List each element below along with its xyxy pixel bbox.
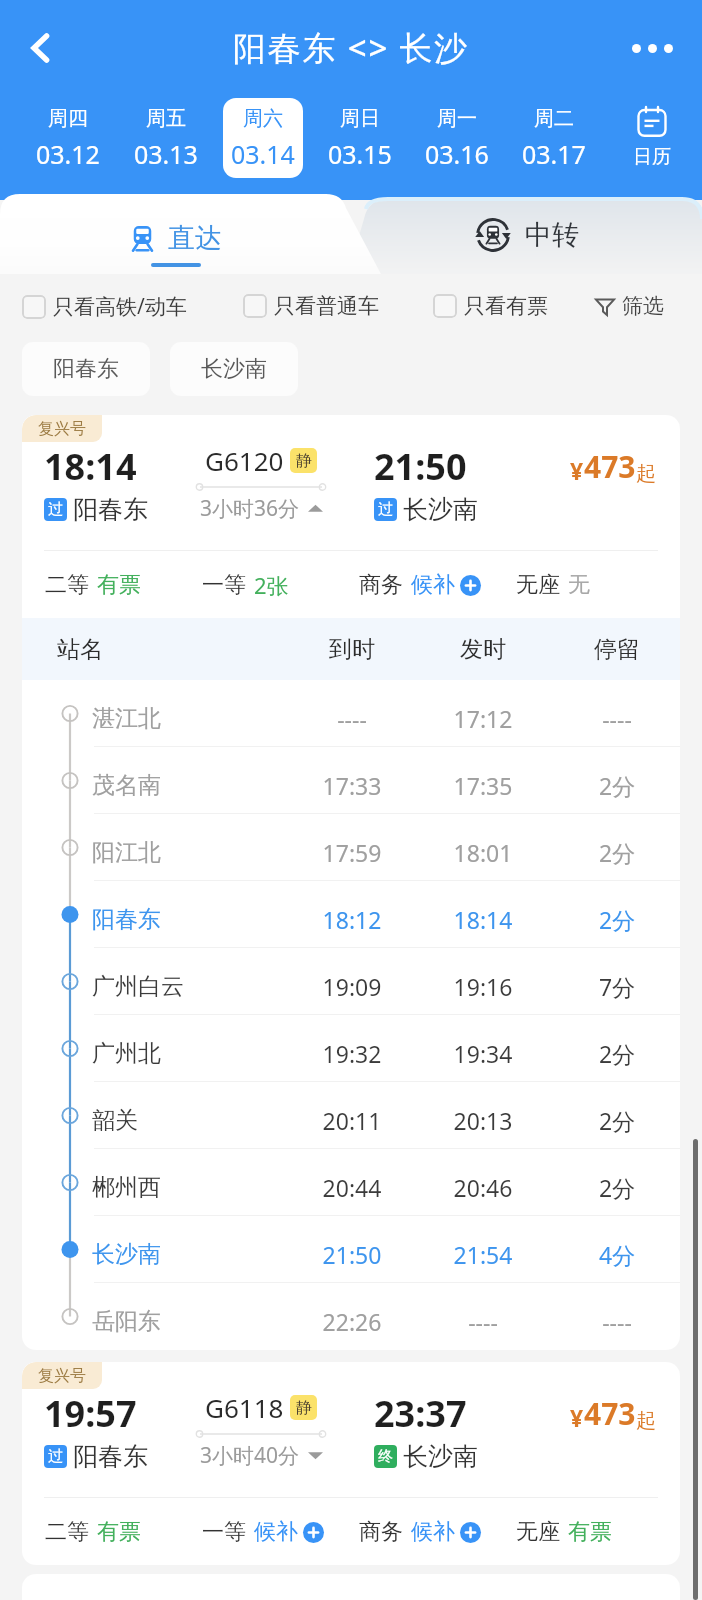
staticText: 筛选 — [622, 293, 664, 319]
staticText: G6118 — [205, 1390, 284, 1425]
button[interactable]: 只看普通车 — [243, 293, 379, 319]
staticText: 岳阳东 — [92, 1307, 292, 1336]
button[interactable]: 周四 — [19, 98, 117, 178]
button[interactable]: 只看高铁/动车 — [22, 292, 187, 321]
staticText: 候补 — [254, 1518, 298, 1546]
staticText: 17:33 — [292, 770, 412, 801]
staticText: 03.14 — [231, 137, 295, 171]
staticText: 周日 — [340, 106, 380, 131]
staticText: 站名 — [57, 635, 292, 664]
staticText: 473 — [584, 1393, 636, 1434]
staticText: 19:32 — [292, 1038, 412, 1069]
staticText: 过 — [48, 1447, 63, 1466]
staticText: 23:37 — [374, 1389, 467, 1438]
button[interactable]: Back — [10, 18, 70, 78]
staticText: 阳春东 — [73, 494, 148, 525]
button[interactable]: Calendar — [602, 98, 702, 178]
staticText: 阳春东 — [53, 355, 119, 383]
staticText: 17:59 — [292, 837, 412, 868]
button[interactable]: 筛选 — [595, 293, 664, 319]
button[interactable]: 复兴号 — [22, 415, 680, 1350]
staticText: 周四 — [48, 106, 88, 131]
staticText: 停留 — [554, 635, 680, 664]
staticText: 长沙南 — [92, 1240, 292, 1269]
button[interactable]: 阳春东 — [22, 342, 150, 396]
staticText: 过 — [378, 500, 393, 519]
staticText: 03.17 — [522, 137, 586, 171]
staticText: 20:46 — [412, 1172, 554, 1203]
staticText: 商务 — [359, 1518, 403, 1546]
staticText: 3小时40分 — [200, 1441, 300, 1470]
button[interactable]: 周一 — [408, 98, 505, 178]
staticText: 复兴号 — [38, 1366, 86, 1386]
staticText: 无 — [568, 571, 590, 599]
staticText: 长沙南 — [403, 1441, 478, 1472]
staticText: 无座 — [516, 1518, 560, 1546]
button[interactable]: 长沙南 — [170, 342, 298, 396]
staticText: 静 — [296, 451, 312, 471]
staticText: 18:12 — [292, 904, 412, 935]
staticText: 阳春东 — [92, 905, 292, 934]
staticText: 18:14 — [412, 904, 554, 935]
staticText: 郴州西 — [92, 1173, 292, 1202]
staticText: 2分 — [554, 837, 680, 868]
button[interactable]: 直达 — [0, 194, 352, 268]
staticText: 21:54 — [412, 1239, 554, 1270]
staticText: 2分 — [554, 904, 680, 935]
staticText: 二等 — [45, 1518, 89, 1546]
staticText: 有票 — [568, 1518, 612, 1546]
staticText: 只看有票 — [464, 293, 548, 319]
staticText: 20:11 — [292, 1105, 412, 1136]
staticText: 到时 — [292, 635, 412, 664]
button[interactable]: 周六 — [214, 98, 311, 178]
staticText: 周二 — [534, 106, 574, 131]
staticText: 21:50 — [292, 1239, 412, 1270]
staticText: 候补 — [411, 1518, 455, 1546]
staticText: 起 — [636, 1408, 656, 1433]
staticText: 22:26 — [292, 1306, 412, 1337]
staticText: 起 — [636, 461, 656, 486]
staticText: 湛江北 — [92, 704, 292, 733]
staticText: 周六 — [243, 106, 283, 131]
staticText: 韶关 — [92, 1106, 292, 1135]
staticText: ---- — [412, 1306, 554, 1337]
staticText: 过 — [48, 500, 63, 519]
staticText: 17:12 — [412, 703, 554, 734]
button[interactable]: More options — [622, 18, 682, 78]
staticText: 03.16 — [425, 137, 489, 171]
staticText: 长沙南 — [201, 355, 267, 383]
staticText: 19:34 — [412, 1038, 554, 1069]
staticText: 长沙南 — [403, 494, 478, 525]
button[interactable]: 周二 — [505, 98, 602, 178]
staticText: 21:50 — [374, 442, 467, 491]
staticText: 18:01 — [412, 837, 554, 868]
staticText: 周一 — [437, 106, 477, 131]
staticText: 阳江北 — [92, 838, 292, 867]
staticText: 静 — [296, 1398, 312, 1418]
staticText: 周五 — [146, 106, 186, 131]
staticText: 阳春东 <> 长沙 — [233, 25, 470, 70]
staticText: ---- — [554, 1306, 680, 1337]
staticText: 03.13 — [134, 137, 198, 171]
staticText: 直达 — [168, 221, 222, 255]
button[interactable]: 中转 — [352, 194, 702, 268]
staticText: 候补 — [411, 571, 455, 599]
staticText: 一等 — [202, 1518, 246, 1546]
staticText: 4分 — [554, 1239, 680, 1270]
staticText: 20:13 — [412, 1105, 554, 1136]
button[interactable]: 只看有票 — [433, 293, 548, 319]
staticText: 只看高铁/动车 — [53, 292, 187, 321]
staticText: 只看普通车 — [274, 293, 379, 319]
staticText: 2分 — [554, 770, 680, 801]
staticText: 7分 — [554, 971, 680, 1002]
button[interactable]: 周五 — [117, 98, 214, 178]
staticText: 17:35 — [412, 770, 554, 801]
button[interactable]: 周日 — [311, 98, 408, 178]
staticText: G6120 — [205, 443, 284, 478]
staticText: 有票 — [97, 1518, 141, 1546]
staticText: 18:14 — [44, 442, 137, 491]
staticText: 3小时36分 — [200, 494, 300, 523]
button[interactable]: 复兴号 — [22, 1362, 680, 1565]
staticText: 商务 — [359, 571, 403, 599]
